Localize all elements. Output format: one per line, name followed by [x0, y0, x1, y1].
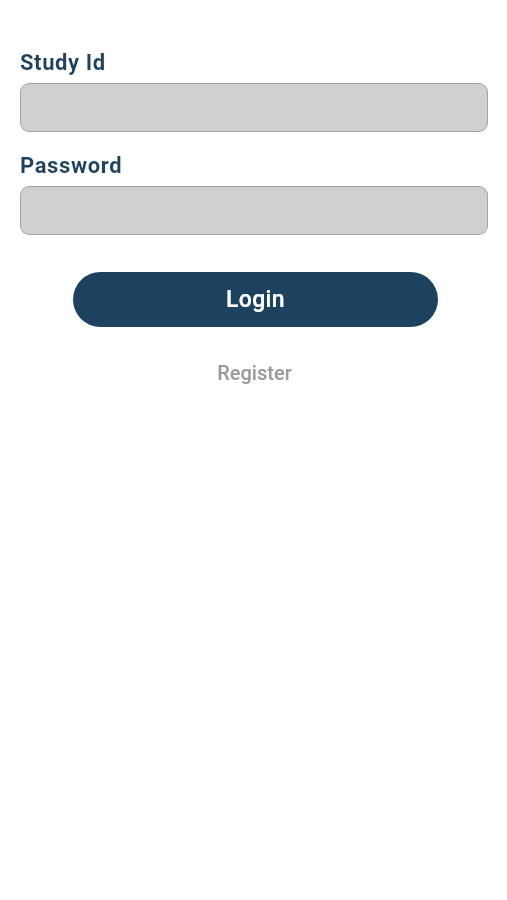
- button[interactable]: Study Id: [20, 83, 488, 132]
- button[interactable]: Login: [73, 272, 438, 327]
- staticText: Register: [217, 361, 292, 384]
- staticText: Login: [226, 286, 285, 313]
- staticText: Password: [20, 153, 123, 179]
- staticText: Study Id: [20, 50, 106, 76]
- button[interactable]: Register: [205, 359, 304, 386]
- button[interactable]: Password: [20, 186, 488, 235]
